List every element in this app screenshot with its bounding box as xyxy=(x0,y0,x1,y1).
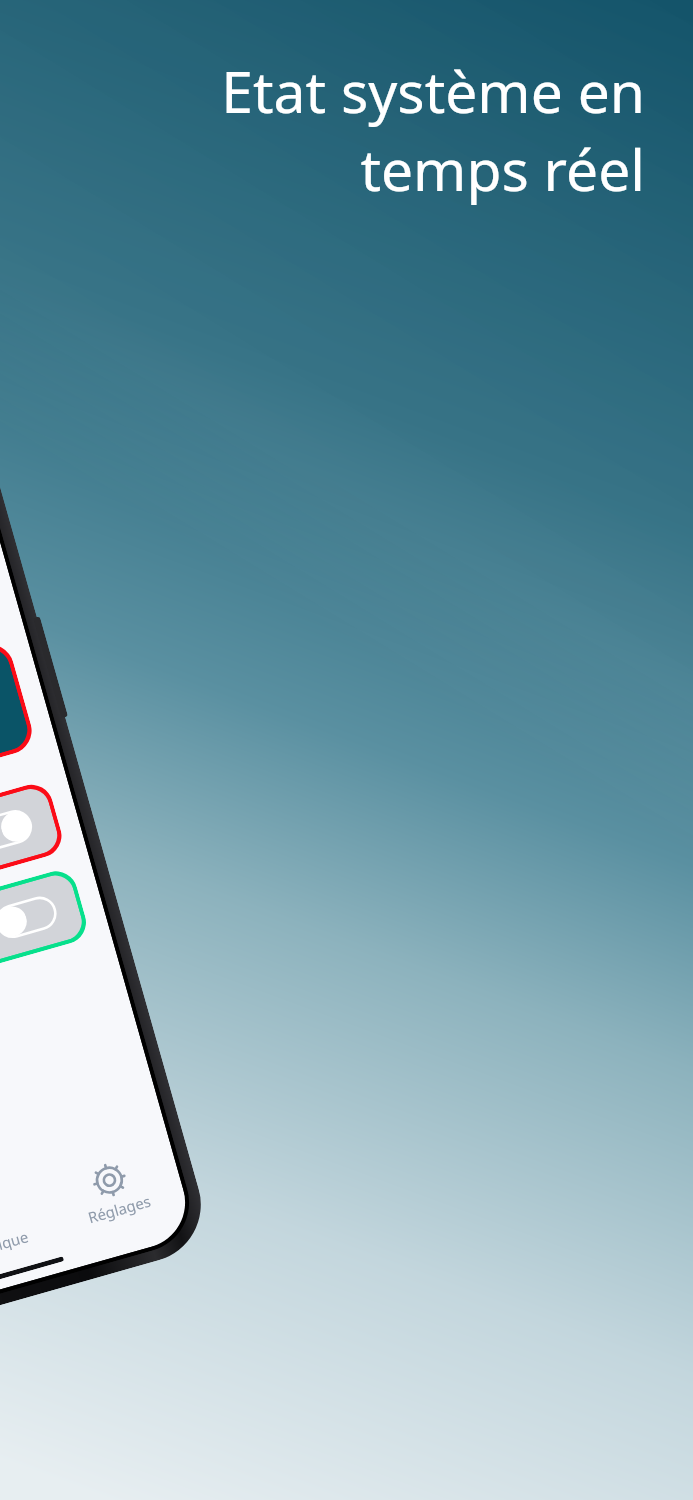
staticText: temps réel xyxy=(360,130,645,208)
button[interactable]: Historique xyxy=(0,1173,60,1279)
button[interactable] xyxy=(0,892,61,942)
button[interactable] xyxy=(0,866,91,1035)
staticText: Etat système en xyxy=(221,52,645,130)
button[interactable] xyxy=(0,510,2,722)
other: Réglages xyxy=(90,1161,129,1199)
button[interactable]: Réglages xyxy=(40,1137,188,1242)
staticText: Historique xyxy=(0,1226,31,1265)
staticText: Réglages xyxy=(86,1190,154,1227)
button[interactable] xyxy=(0,806,36,855)
button[interactable] xyxy=(0,780,67,949)
button[interactable] xyxy=(0,639,37,845)
